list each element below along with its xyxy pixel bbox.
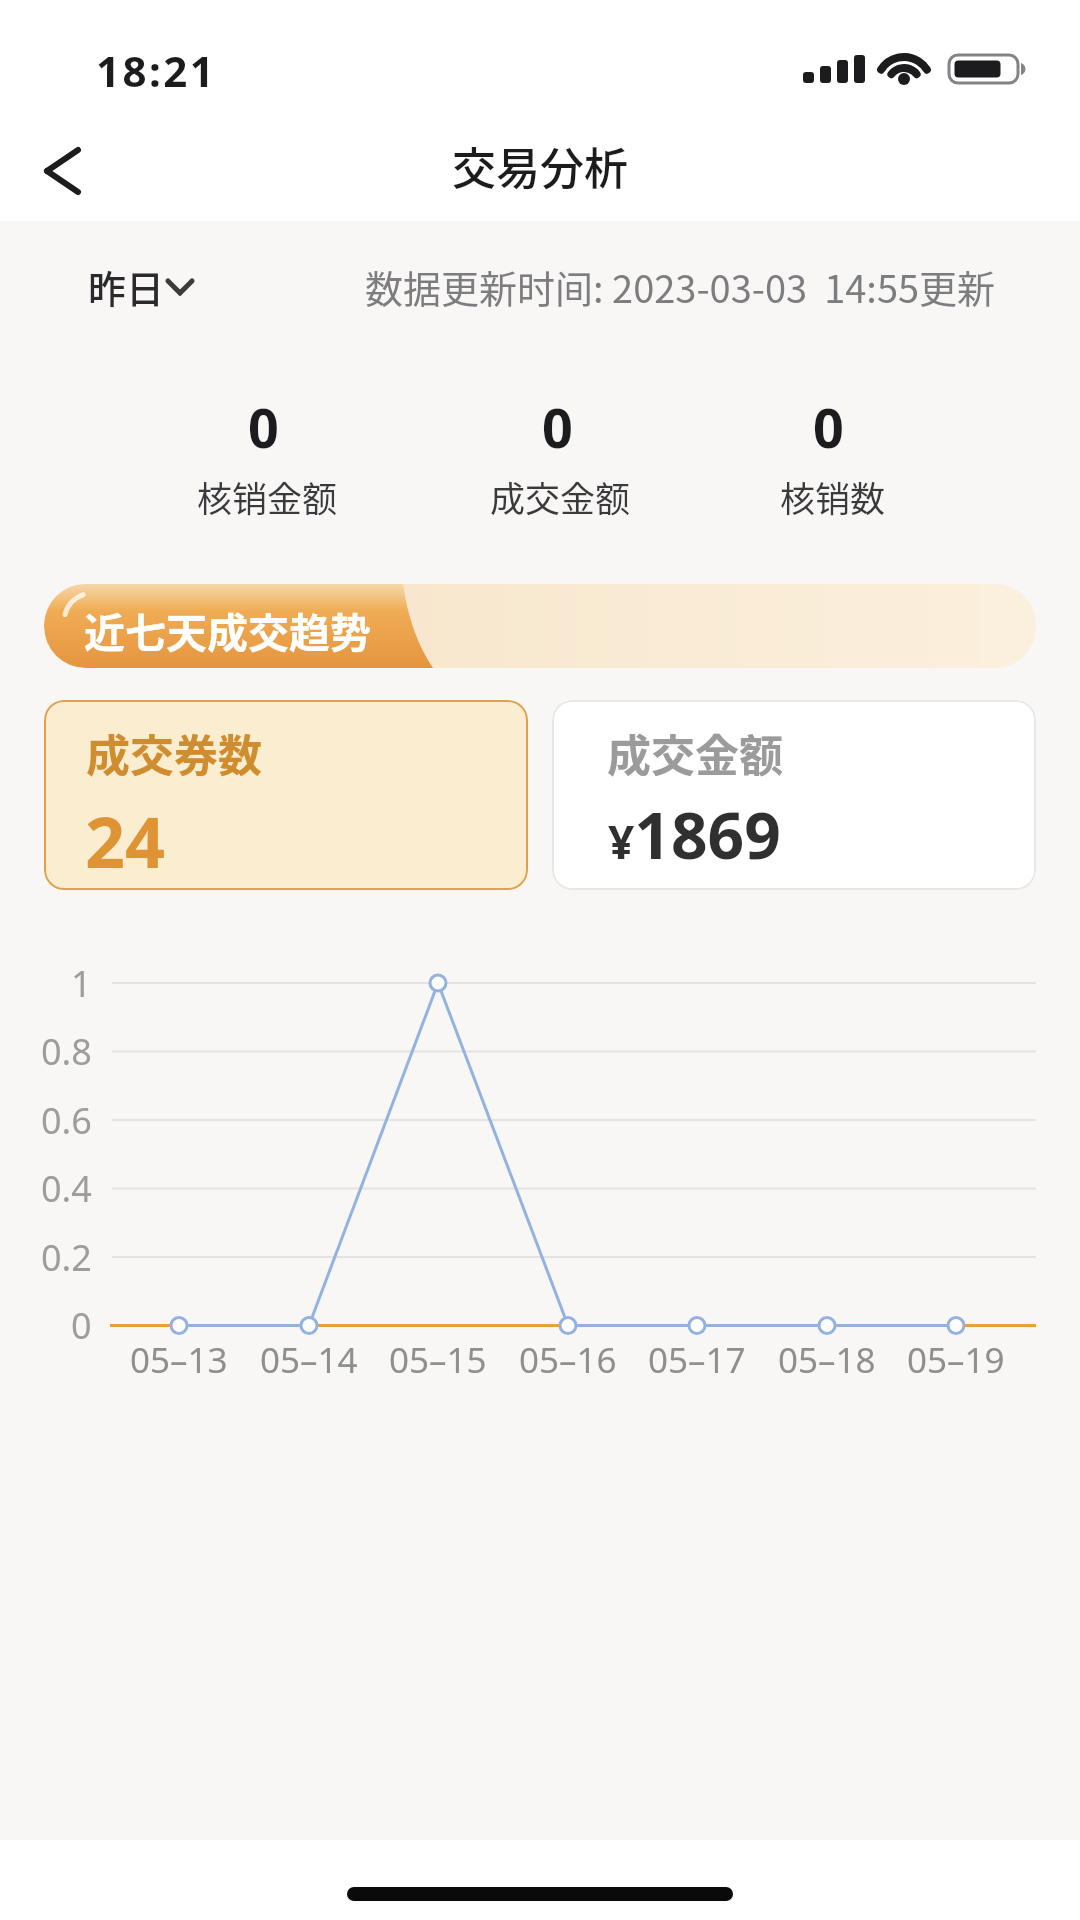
staticText: 0 — [813, 390, 844, 464]
staticText: 昨日 — [88, 259, 165, 314]
staticText: 成交金额 — [490, 471, 631, 522]
staticText: 核销金额 — [197, 471, 338, 522]
staticText: 0 — [542, 390, 573, 464]
staticText: 0 — [248, 390, 279, 464]
staticText: 成交金额 — [607, 721, 783, 777]
staticText: 0.4 — [41, 1164, 92, 1213]
staticText: 0.6 — [41, 1096, 92, 1145]
staticText: 0 — [71, 1301, 92, 1350]
staticText: 05–18 — [778, 1336, 876, 1384]
staticText: 0.8 — [41, 1027, 92, 1076]
staticText: ¥1869 — [608, 791, 781, 851]
staticText: 24 — [85, 793, 166, 849]
staticText: 交易分析 — [452, 134, 628, 198]
staticText: 05–19 — [907, 1336, 1005, 1384]
button[interactable] — [80, 258, 210, 322]
staticText: 05–16 — [519, 1336, 617, 1384]
staticText: 05–14 — [260, 1336, 358, 1384]
staticText: 数据更新时间: 2023-03-03 14:55更新 — [365, 259, 996, 314]
button[interactable] — [552, 700, 1036, 890]
staticText: 0.2 — [41, 1233, 92, 1282]
button[interactable] — [44, 700, 528, 890]
staticText: 05–15 — [389, 1336, 487, 1384]
staticText: 05–13 — [130, 1336, 228, 1384]
staticText: 1 — [71, 959, 92, 1008]
staticText: 成交券数 — [86, 721, 262, 777]
staticText: 05–17 — [648, 1336, 746, 1384]
staticText: 近七天成交趋势 — [84, 600, 371, 656]
staticText: 18:21 — [96, 42, 217, 98]
button[interactable] — [20, 130, 110, 210]
staticText: 核销数 — [780, 471, 886, 522]
